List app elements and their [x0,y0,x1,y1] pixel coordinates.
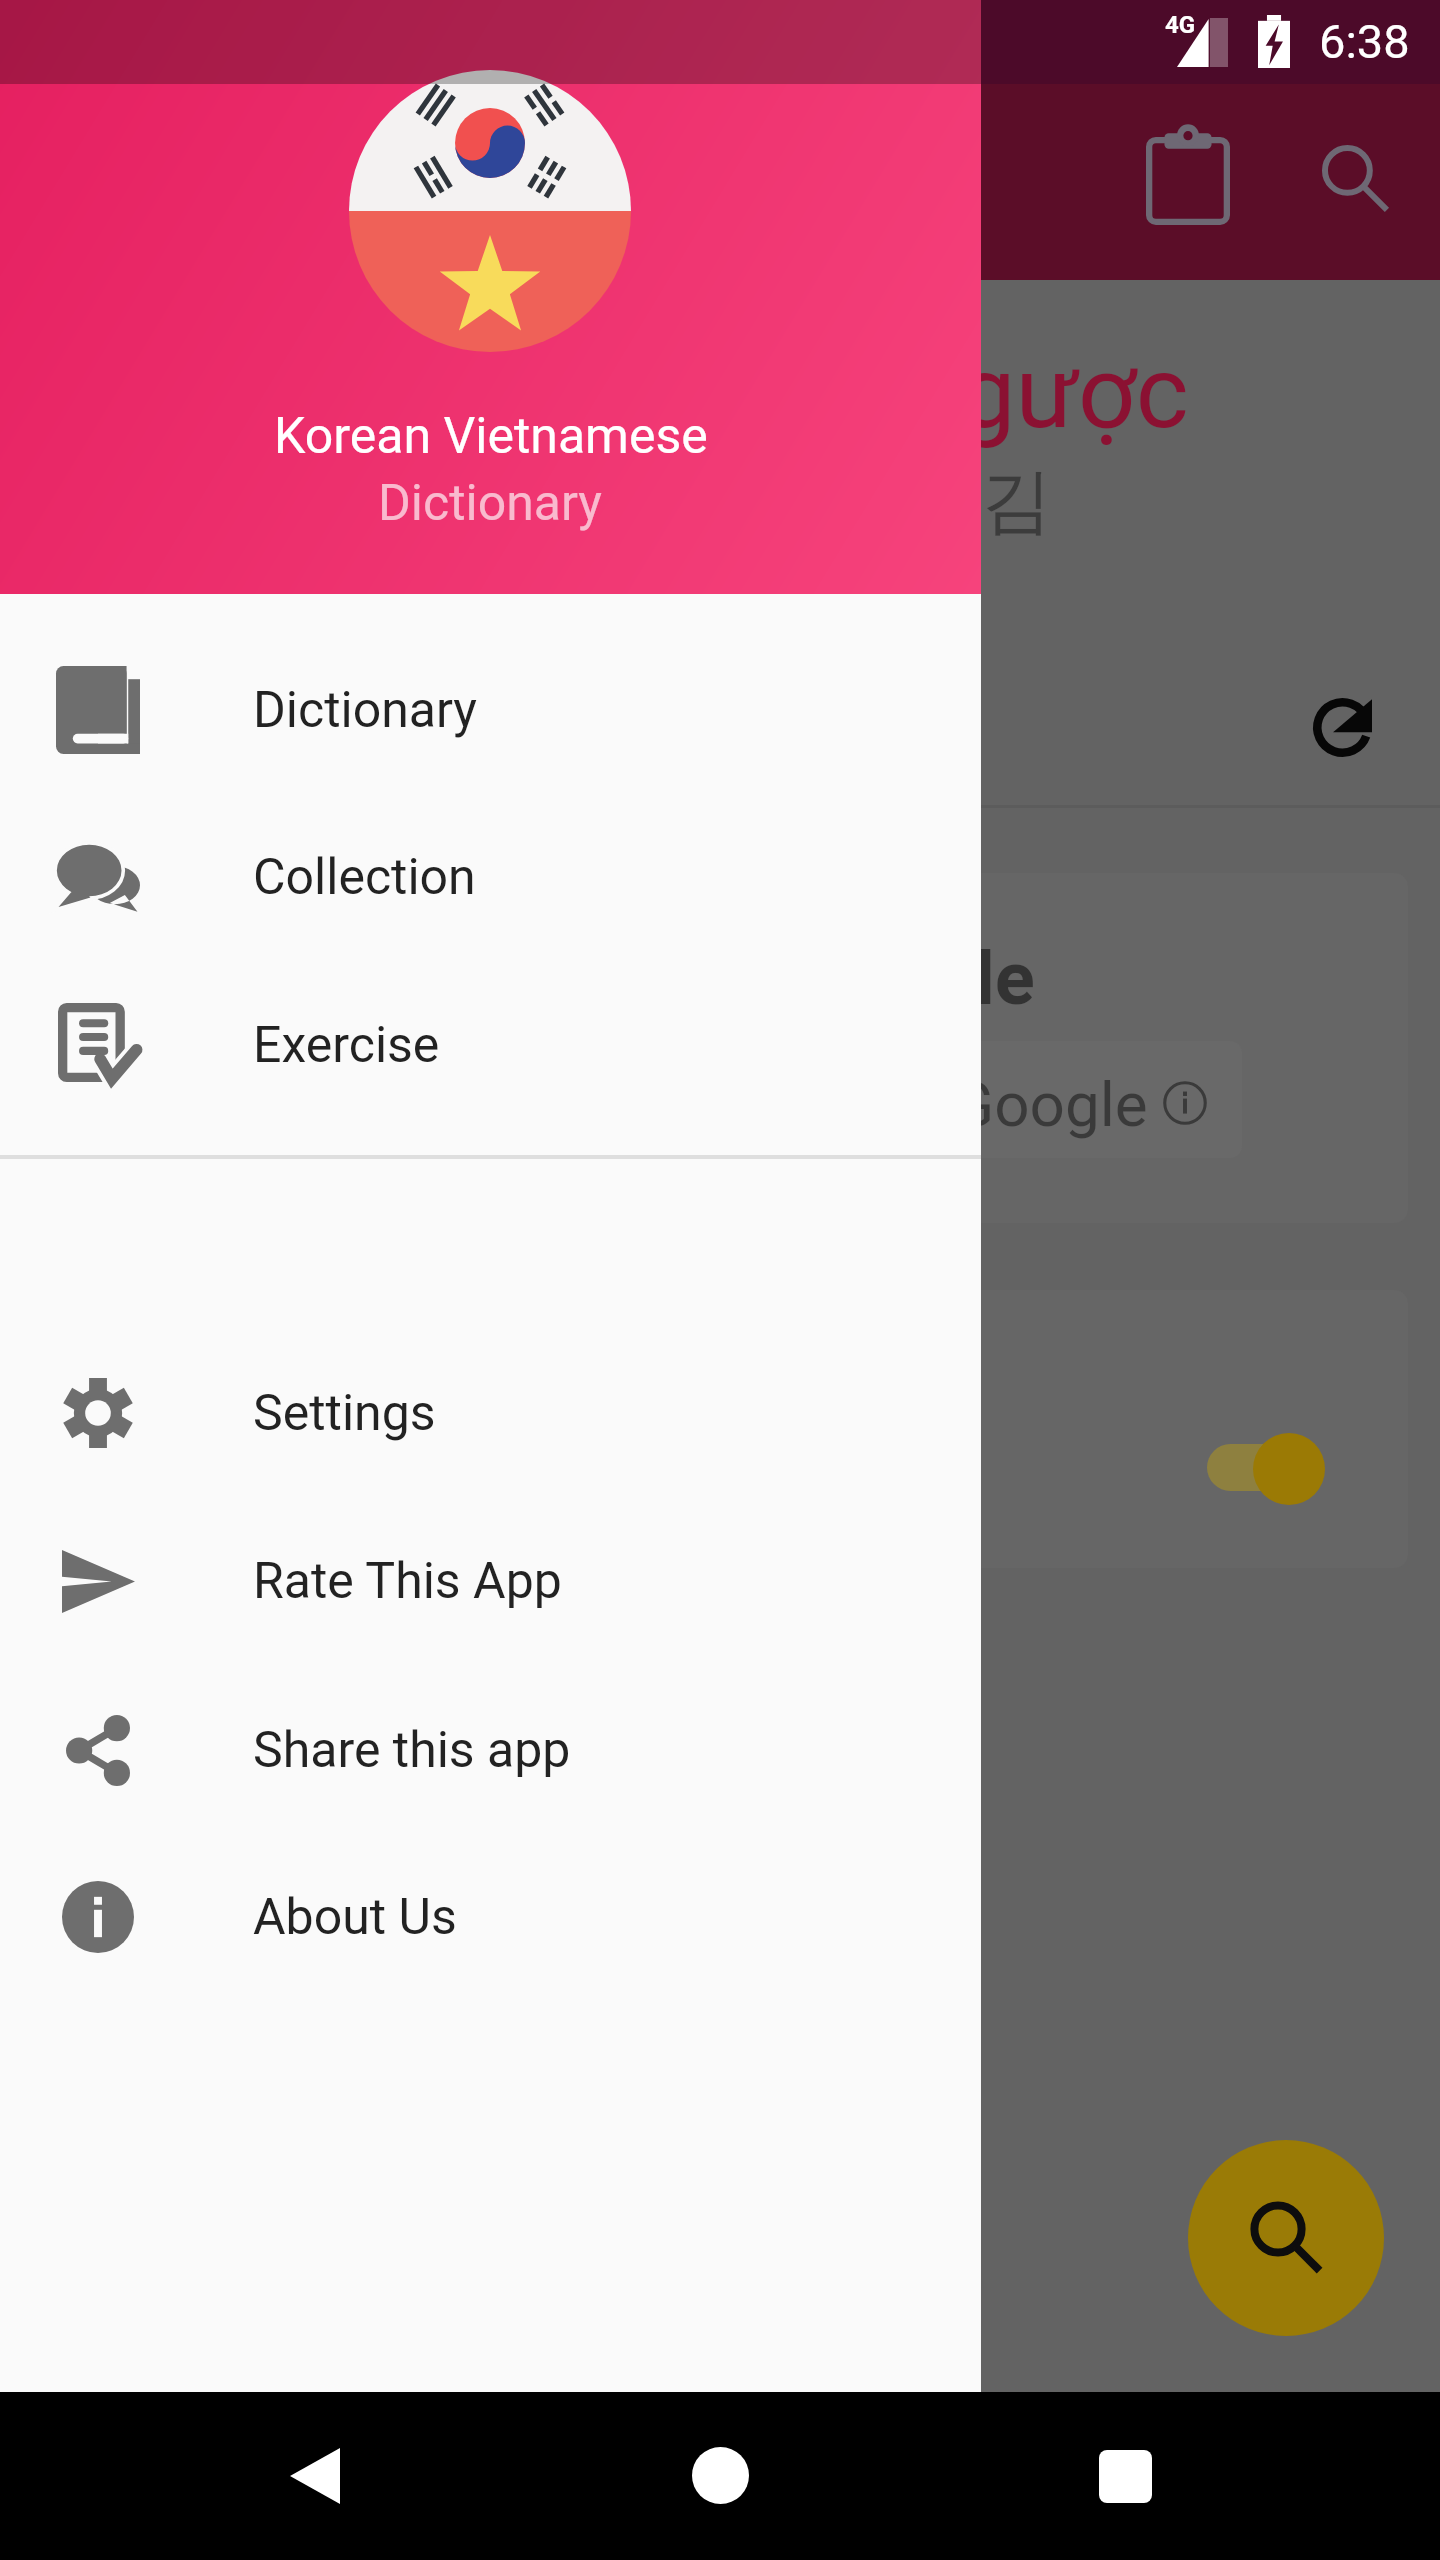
button[interactable]: Share this app [0,1666,981,1834]
button[interactable]: Search [1188,2140,1384,2336]
staticText: 흥김 [910,457,1052,546]
staticText: Dictionary [253,681,478,740]
button[interactable]: Clipboard [1146,129,1230,225]
staticText: 4G [1165,11,1196,39]
staticText: ngược [903,333,1189,451]
staticText: About Us [253,1888,457,1947]
staticText: Exercise [253,1016,440,1075]
button[interactable]: Back [245,2406,385,2546]
staticText: Share this app [253,1721,571,1780]
button[interactable]: Recents [1055,2406,1195,2546]
staticText: Rate This App [253,1552,562,1611]
button[interactable]: Home [650,2405,790,2545]
button[interactable]: Toggle [1207,1444,1321,1491]
staticText: nhỏ le [832,935,1035,1022]
button[interactable]: Dictionary [0,626,981,794]
staticText: Google [952,1068,1148,1141]
staticText: 6:38 [1319,14,1410,69]
button[interactable]: Search [1317,140,1393,216]
staticText: Korean Vietnamese [274,407,708,466]
button[interactable]: Settings [0,1329,981,1497]
button[interactable] [890,1041,1242,1158]
button[interactable]: Rate This App [0,1497,981,1665]
staticText: Settings [253,1384,436,1443]
staticText: Collection [253,848,476,907]
button[interactable]: Collection [0,793,981,961]
button[interactable]: Exercise [0,961,981,1129]
button[interactable]: About Us [0,1833,981,2001]
staticText: Dictionary [378,474,603,533]
